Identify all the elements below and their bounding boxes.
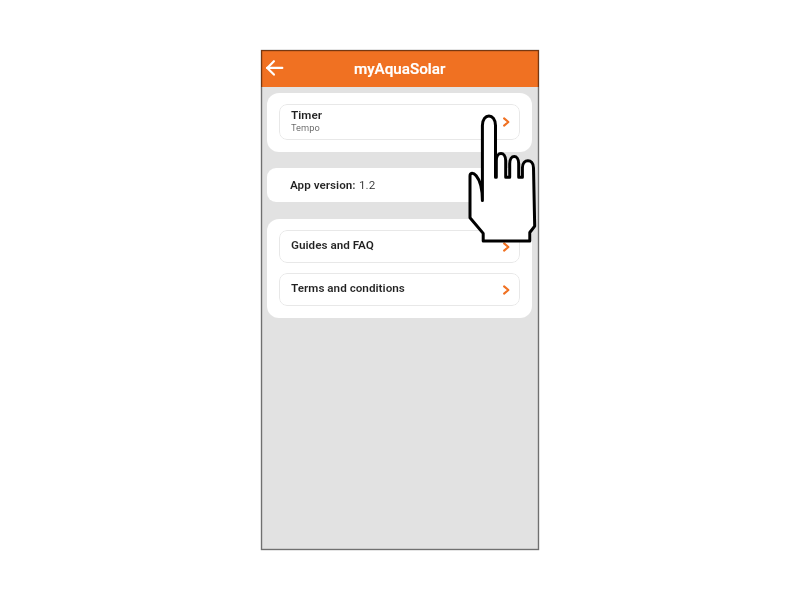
staticText: Terms and conditions [291, 281, 405, 295]
button[interactable]: Terms and conditions [279, 273, 520, 306]
staticText: myAquaSolar [354, 60, 446, 78]
button[interactable]: Guides and FAQ [279, 230, 520, 263]
staticText: Guides and FAQ [291, 238, 374, 252]
staticText: Tempo [291, 122, 320, 133]
staticText: App version: [290, 178, 359, 192]
staticText: Timer [291, 108, 323, 122]
staticText: 1.2 [359, 178, 376, 192]
button[interactable]: Back [262, 51, 296, 85]
button[interactable]: Timer [279, 104, 520, 140]
